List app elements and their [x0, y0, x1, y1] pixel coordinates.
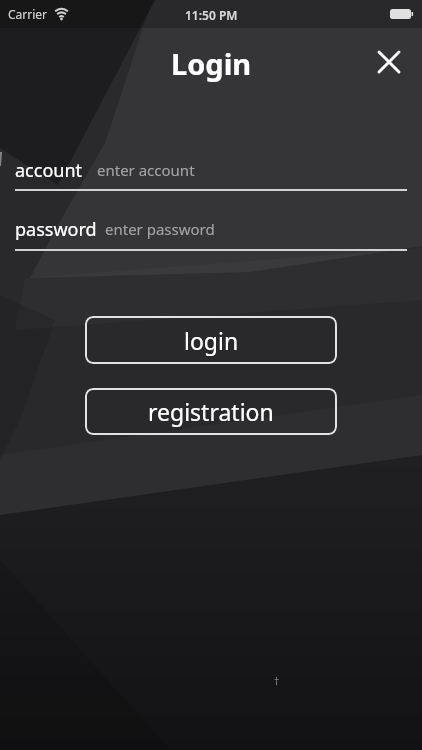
staticText: Login: [171, 44, 252, 83]
staticText: 11:50 PM: [185, 7, 238, 23]
staticText: password: [15, 217, 97, 242]
staticText: †: [274, 674, 280, 688]
staticText: login: [184, 325, 239, 356]
button[interactable]: password: [0, 212, 422, 246]
button[interactable]: [372, 45, 406, 79]
button[interactable]: registration: [85, 388, 337, 435]
button[interactable]: account: [0, 153, 422, 187]
staticText: enter account: [97, 160, 195, 180]
staticText: Carrier: [8, 6, 48, 22]
button[interactable]: login: [85, 316, 337, 364]
staticText: registration: [148, 396, 274, 427]
staticText: account: [15, 158, 83, 183]
staticText: enter password: [105, 219, 215, 239]
